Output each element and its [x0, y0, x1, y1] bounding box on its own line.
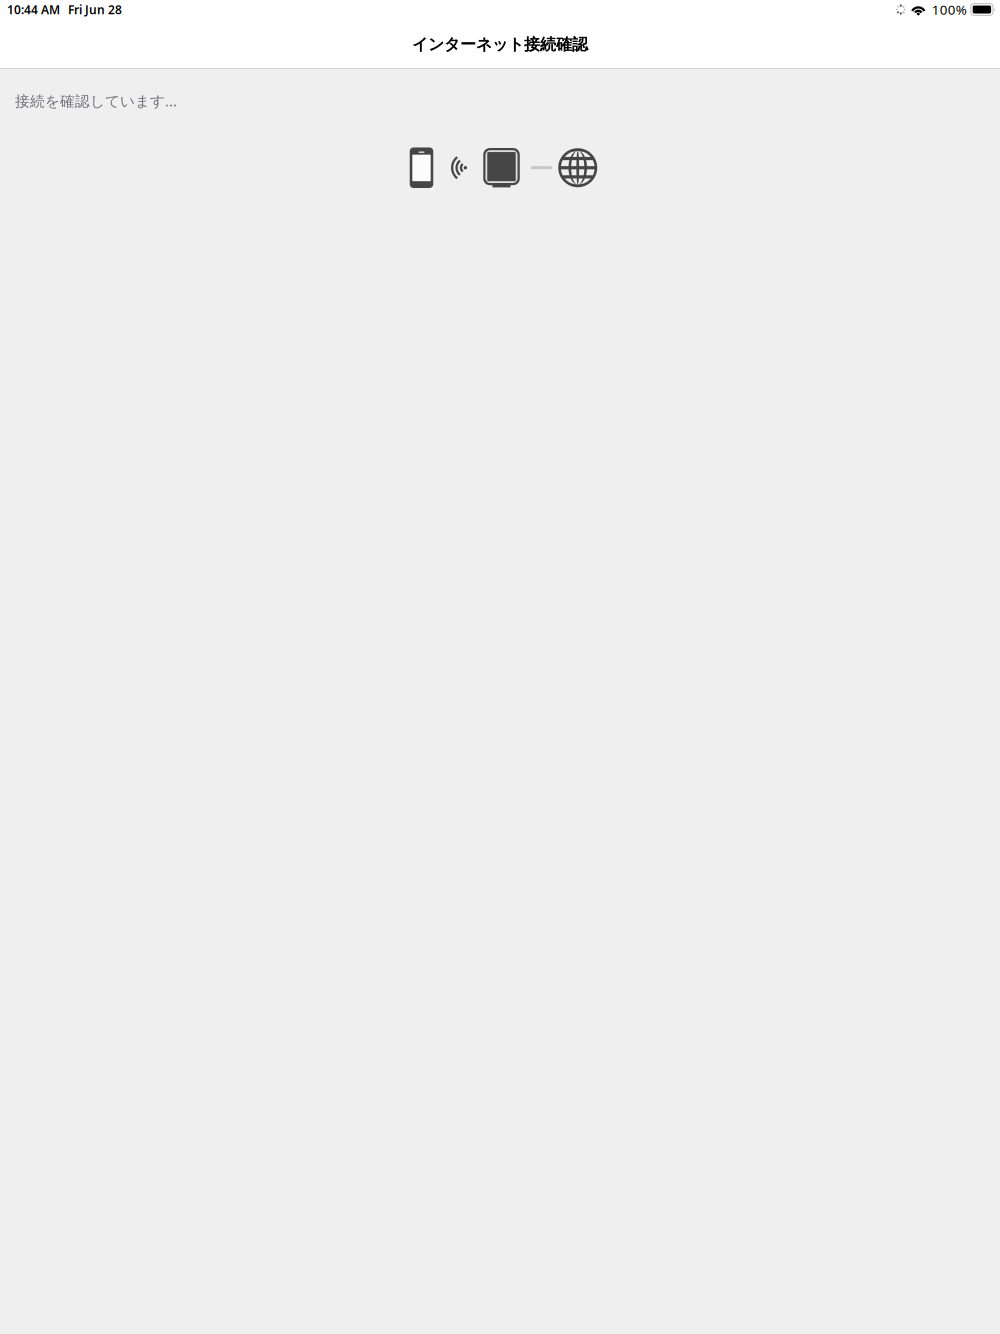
staticText: インターネット接続確認: [412, 35, 588, 54]
staticText: Fri Jun 28: [68, 1, 122, 17]
staticText: 100%: [932, 1, 967, 18]
staticText: 10:44 AM: [7, 1, 60, 17]
staticText: 接続を確認しています...: [15, 91, 177, 110]
